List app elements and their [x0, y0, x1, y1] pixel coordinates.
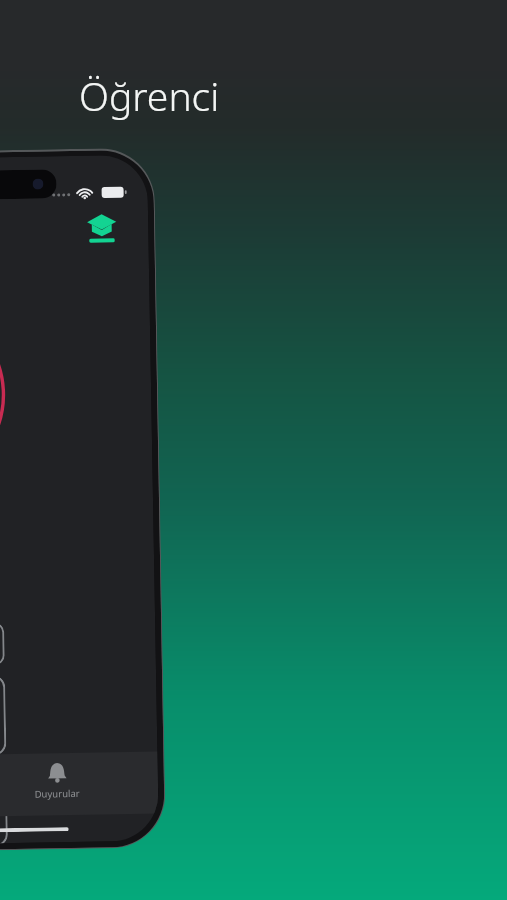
button[interactable]: Kart [0, 766, 8, 845]
staticText: Öğrenci [79, 69, 220, 122]
button[interactable]: Duyurular [18, 760, 96, 809]
staticText: Duyurular [34, 787, 80, 801]
button[interactable]: Öğrenci [86, 212, 117, 244]
button[interactable]: Ders seçimi [0, 622, 5, 667]
button[interactable]: Kart [0, 675, 6, 757]
